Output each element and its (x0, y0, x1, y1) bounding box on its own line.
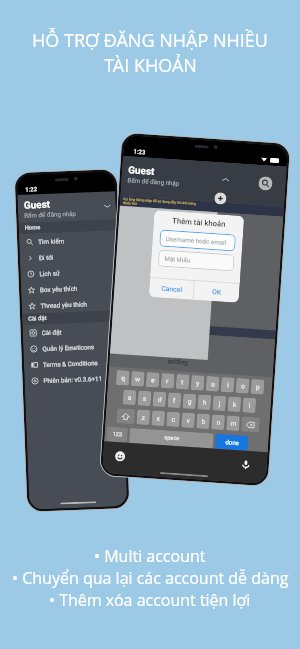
button[interactable]: Thread yêu thích (21, 294, 120, 314)
staticText: g (188, 398, 192, 406)
button[interactable]: 123 (106, 426, 128, 443)
staticText: y (196, 379, 200, 387)
staticText: j (218, 400, 221, 408)
staticText: Guest (128, 164, 155, 178)
staticText: 1:23 (133, 148, 146, 155)
button[interactable]: l (242, 397, 256, 413)
staticText: • Multi account (94, 545, 206, 567)
button[interactable]: b (196, 413, 210, 429)
button[interactable]: space (129, 428, 214, 448)
staticText: b (201, 418, 206, 426)
staticText: Terms & Conditions (43, 359, 98, 368)
button[interactable]: OK (194, 281, 240, 303)
button[interactable]: Cancel (149, 278, 194, 300)
staticText: h (203, 399, 207, 407)
button[interactable]: y (191, 375, 205, 391)
staticText: m (230, 420, 237, 428)
staticText: adding (167, 357, 189, 367)
button[interactable]: c (166, 411, 180, 427)
staticText: Cài đặt (41, 328, 62, 336)
button[interactable]: Quản lý Emeticons (23, 337, 121, 357)
staticText: p (256, 383, 260, 391)
button[interactable]: Phiên bản: v0.3.6+11 (24, 369, 123, 389)
staticText: Bấm để đăng nhập (127, 176, 179, 187)
button[interactable]: Đi tới (19, 246, 118, 266)
staticText: OK (212, 288, 221, 297)
staticText: o (241, 382, 245, 390)
staticText: Username hoặc email (165, 235, 227, 246)
button[interactable]: g (182, 393, 196, 409)
staticText: Cài đặt (28, 315, 47, 323)
staticText: • Chuyển qua lại các account dễ dàng (12, 567, 289, 589)
button[interactable]: p (250, 379, 264, 395)
button[interactable]: k (227, 396, 241, 412)
staticText: c (171, 416, 176, 424)
staticText: n (216, 419, 221, 427)
staticText: Thêm tài khoản (154, 215, 244, 230)
button[interactable]: f (167, 392, 181, 408)
button[interactable]: done (215, 434, 249, 451)
button[interactable]: n (211, 414, 225, 430)
button[interactable]: Backspace (241, 416, 260, 433)
button[interactable]: x (151, 410, 165, 426)
staticText: Guest (24, 199, 51, 212)
staticText: w (135, 375, 140, 383)
button[interactable]: Guest (17, 191, 116, 223)
button[interactable]: Search (258, 176, 273, 191)
staticText: s (143, 395, 147, 403)
button[interactable]: r (161, 373, 175, 389)
button[interactable]: q (116, 370, 130, 386)
staticText: Tìm kiếm (38, 237, 64, 245)
button[interactable]: Microphone (239, 458, 251, 470)
staticText: q (121, 374, 125, 382)
button[interactable]: i (221, 377, 235, 393)
staticText: i (227, 381, 229, 389)
button[interactable]: Emoji (114, 450, 125, 462)
button[interactable]: j (212, 395, 226, 411)
button[interactable]: u (206, 376, 220, 392)
button[interactable]: s (137, 390, 151, 406)
staticText: • Thêm xóa account tiện lợi (49, 589, 251, 611)
button[interactable]: t (176, 374, 190, 390)
staticText: r (166, 377, 169, 385)
button[interactable]: Lịch sử (20, 262, 119, 282)
button[interactable]: Cài đặt (22, 321, 121, 341)
staticText: z (141, 414, 146, 422)
button[interactable]: a (123, 389, 137, 405)
staticText: f (173, 397, 176, 405)
button[interactable]: z (136, 409, 150, 425)
button[interactable]: Add account (214, 192, 227, 205)
staticText: TÀI KHOẢN (104, 53, 197, 78)
staticText: Phiên bản: v0.3.6+11 (43, 375, 103, 384)
staticText: Thread yêu thích (40, 300, 88, 309)
button[interactable]: Tìm kiếm (19, 230, 117, 250)
button[interactable]: d (152, 391, 166, 407)
staticText: Box yêu thích (40, 285, 78, 293)
button[interactable]: Terms & Conditions (24, 353, 122, 373)
button[interactable]: Username hoặc email (159, 229, 236, 251)
staticText: 123 (112, 431, 123, 438)
button[interactable]: v (181, 412, 195, 428)
staticText: Mật khẩu (164, 255, 191, 264)
button[interactable]: Box yêu thích (21, 278, 119, 298)
button[interactable]: Mật khẩu (158, 249, 235, 271)
staticText: Nhấn thử (123, 201, 137, 206)
staticText: Home (24, 224, 41, 232)
staticText: HỖ TRỢ ĐĂNG NHẬP NHIỀU (32, 28, 268, 53)
button[interactable]: e (146, 372, 160, 388)
staticText: Vui lòng đăng nhập để sử dụng đầy đủ tín… (123, 197, 196, 206)
staticText: v (186, 417, 191, 425)
staticText: d (158, 396, 162, 404)
button[interactable]: Shift (116, 408, 135, 424)
staticText: done (225, 438, 239, 446)
staticText: Cancel (161, 285, 182, 294)
staticText: 1:22 (25, 185, 37, 193)
staticText: t (181, 378, 184, 386)
button[interactable]: w (131, 371, 145, 387)
button[interactable]: o (236, 378, 250, 394)
button[interactable]: m (226, 415, 240, 431)
staticText: space (164, 434, 180, 442)
staticText: e (151, 376, 155, 384)
button[interactable]: h (197, 394, 211, 410)
staticText: Bấm để đăng nhập (24, 210, 76, 219)
